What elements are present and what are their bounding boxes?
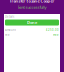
staticText: Sent successfully: [17, 4, 46, 10]
staticText: Transfer to Jane Cooper: [9, 0, 54, 3]
staticText: Done: [27, 20, 37, 25]
staticText: Fee: [5, 33, 10, 37]
staticText: Amount: [5, 28, 16, 32]
button[interactable]: Done: [5, 19, 59, 25]
staticText: Details: [5, 15, 14, 18]
staticText: £250.00: [46, 28, 59, 32]
staticText: Free: [53, 33, 59, 37]
